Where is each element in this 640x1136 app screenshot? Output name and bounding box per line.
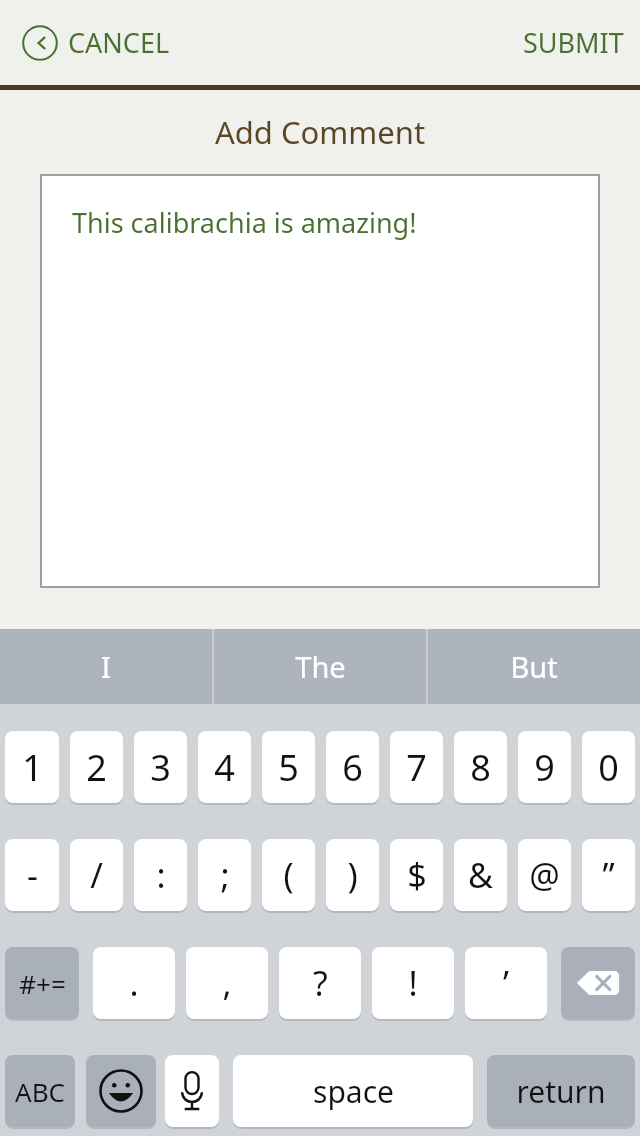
staticText: 5 <box>278 743 299 792</box>
button[interactable]: , <box>186 947 268 1019</box>
staticText: 2 <box>86 743 107 792</box>
staticText: ) <box>347 852 358 898</box>
staticText: 7 <box>406 743 427 792</box>
button[interactable]: ( <box>262 839 315 911</box>
button[interactable]: space <box>233 1055 473 1127</box>
staticText: ’ <box>503 960 509 1006</box>
button[interactable]: @ <box>518 839 571 911</box>
button[interactable]: 0 <box>582 731 635 803</box>
button[interactable]: Backspace <box>561 947 635 1019</box>
staticText: 8 <box>470 743 491 792</box>
button[interactable]: ; <box>198 839 251 911</box>
staticText: 6 <box>342 743 363 792</box>
button[interactable]: This calibrachia is amazing! <box>42 176 598 586</box>
staticText: This calibrachia is amazing! <box>72 204 417 241</box>
button[interactable]: 3 <box>134 731 187 803</box>
button[interactable]: / <box>70 839 123 911</box>
staticText: #+= <box>19 966 66 1001</box>
staticText: space <box>313 1071 394 1112</box>
staticText: 3 <box>150 743 171 792</box>
staticText: 0 <box>598 743 619 792</box>
staticText: - <box>27 852 38 898</box>
button[interactable]: ABC <box>5 1055 75 1127</box>
button[interactable]: 7 <box>390 731 443 803</box>
staticText: SUBMIT <box>523 24 624 61</box>
staticText: & <box>468 852 493 898</box>
staticText: But <box>510 647 558 686</box>
staticText: 1 <box>22 743 43 792</box>
staticText: I <box>101 647 111 686</box>
button[interactable]: #+= <box>5 947 79 1019</box>
staticText: , <box>222 960 232 1006</box>
staticText: ( <box>283 852 294 898</box>
button[interactable]: ) <box>326 839 379 911</box>
button[interactable]: ? <box>279 947 361 1019</box>
staticText: ; <box>220 852 230 898</box>
staticText: return <box>516 1071 606 1112</box>
staticText: CANCEL <box>68 24 170 61</box>
staticText: 4 <box>214 743 235 792</box>
button[interactable]: But <box>428 629 640 704</box>
staticText: @ <box>529 852 560 898</box>
staticText: ! <box>408 960 418 1006</box>
button[interactable]: 1 <box>5 731 59 803</box>
button[interactable]: ” <box>582 839 635 911</box>
button[interactable]: $ <box>390 839 443 911</box>
button[interactable]: ’ <box>465 947 547 1019</box>
staticText: : <box>156 852 166 898</box>
button[interactable]: & <box>454 839 507 911</box>
button[interactable]: 2 <box>70 731 123 803</box>
button[interactable]: ! <box>372 947 454 1019</box>
staticText: Add Comment <box>215 111 426 153</box>
staticText: ” <box>602 852 615 898</box>
button[interactable]: CANCEL <box>22 24 178 61</box>
button[interactable]: SUBMIT <box>507 16 640 69</box>
button[interactable]: - <box>5 839 59 911</box>
button[interactable]: Emoji keyboard <box>86 1055 156 1127</box>
button[interactable]: I <box>0 629 212 704</box>
staticText: . <box>129 960 139 1006</box>
staticText: 9 <box>534 743 555 792</box>
staticText: The <box>295 647 346 686</box>
button[interactable]: 9 <box>518 731 571 803</box>
button[interactable]: return <box>487 1055 635 1127</box>
button[interactable]: 4 <box>198 731 251 803</box>
staticText: ? <box>313 960 328 1006</box>
button[interactable]: : <box>134 839 187 911</box>
button[interactable]: . <box>93 947 175 1019</box>
button[interactable]: 8 <box>454 731 507 803</box>
button[interactable]: The <box>214 629 426 704</box>
button[interactable]: 5 <box>262 731 315 803</box>
staticText: / <box>90 852 103 898</box>
button[interactable]: 6 <box>326 731 379 803</box>
staticText: ABC <box>15 1074 65 1109</box>
button[interactable]: Voice input <box>165 1055 219 1127</box>
staticText: $ <box>407 852 427 898</box>
